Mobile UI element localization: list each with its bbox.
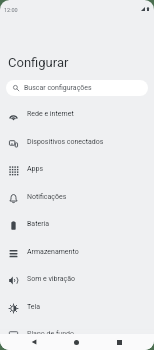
button[interactable]: Tela xyxy=(0,293,154,321)
staticText: Armazenamento xyxy=(27,248,79,256)
button[interactable]: Recent apps xyxy=(106,334,132,350)
staticText: Rede e internet xyxy=(27,110,74,118)
button[interactable]: Back xyxy=(21,334,47,350)
button[interactable]: Apps xyxy=(0,155,154,183)
staticText: Configurar xyxy=(8,55,69,70)
button[interactable]: Buscar configurações xyxy=(6,80,148,96)
button[interactable]: Som e vibração xyxy=(0,265,154,293)
staticText: Apps xyxy=(27,165,44,173)
staticText: Notificações xyxy=(27,193,67,201)
staticText: Plano de fundo xyxy=(27,330,75,338)
staticText: Bateria xyxy=(27,220,50,228)
staticText: Tela xyxy=(27,303,41,311)
staticText: Som e vibração xyxy=(27,275,76,283)
button[interactable]: Dispositivos conectados xyxy=(0,128,154,156)
button[interactable]: Plano de fundo xyxy=(0,320,154,348)
staticText: Dispositivos conectados xyxy=(27,138,104,146)
button[interactable]: Bateria xyxy=(0,210,154,238)
button[interactable]: Home xyxy=(63,334,89,350)
button[interactable]: Notificações xyxy=(0,183,154,211)
staticText: Buscar configurações xyxy=(24,84,92,92)
button[interactable]: Rede e internet xyxy=(0,100,154,128)
staticText: 12:00 xyxy=(4,7,18,13)
button[interactable]: Armazenamento xyxy=(0,238,154,266)
